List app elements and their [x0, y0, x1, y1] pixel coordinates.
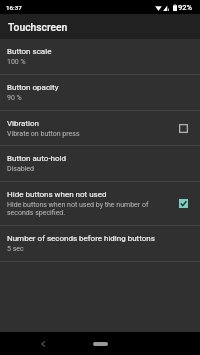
staticText: Button opacity: [7, 83, 59, 92]
staticText: seconds specified.: [7, 209, 66, 217]
staticText: Vibration: [7, 119, 39, 128]
button[interactable]: Button scale: [0, 39, 200, 74]
staticText: Hide buttons when not used: [7, 190, 107, 199]
button[interactable]: Checked: [177, 197, 190, 210]
button[interactable]: Home: [93, 342, 108, 346]
button[interactable]: Button auto-hold: [0, 146, 200, 181]
staticText: Number of seconds before hiding buttons: [7, 234, 155, 243]
staticText: Button auto-hold: [7, 154, 67, 163]
button[interactable]: Vibration: [0, 111, 200, 145]
button[interactable]: Unchecked: [177, 122, 190, 135]
staticText: 16:37: [6, 4, 22, 11]
staticText: Button scale: [7, 47, 52, 56]
staticText: Disabled: [7, 165, 35, 173]
button[interactable]: Back: [35, 336, 51, 352]
button[interactable]: Hide buttons when not used: [0, 182, 200, 225]
staticText: 5 sec: [7, 245, 24, 253]
staticText: Vibrate on button press: [7, 130, 80, 138]
staticText: Touchscreen: [8, 21, 68, 33]
staticText: 100 %: [7, 58, 26, 66]
button[interactable]: Button opacity: [0, 75, 200, 110]
staticText: 92%: [178, 3, 193, 12]
staticText: Hide buttons when not used by the number…: [7, 201, 149, 209]
staticText: 90 %: [7, 94, 22, 102]
button[interactable]: Number of seconds before hiding buttons: [0, 226, 200, 261]
